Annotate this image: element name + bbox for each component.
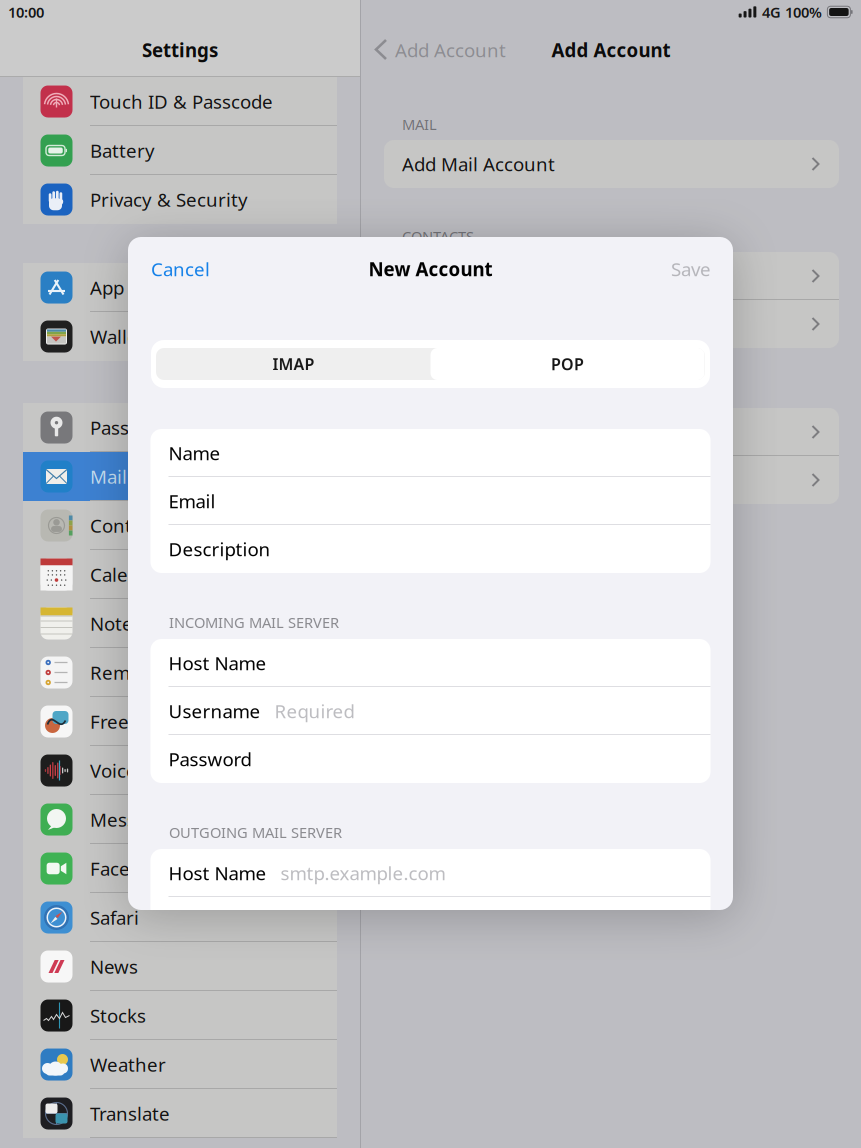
button[interactable]: Privacy & Security	[23, 175, 337, 224]
staticText: Username	[168, 909, 260, 933]
staticText: iCloud	[402, 264, 458, 288]
button[interactable]: Stocks	[23, 991, 337, 1040]
staticText: Name	[168, 441, 220, 465]
button[interactable]: Description	[150, 525, 710, 573]
staticText: CALENDARS	[402, 382, 483, 402]
staticText: News	[90, 954, 138, 979]
button[interactable]: Safari	[23, 893, 337, 942]
button[interactable]: Password	[150, 735, 710, 783]
button[interactable]: Passwords	[23, 403, 337, 452]
staticText: Cancel	[151, 257, 210, 281]
staticText: INCOMING MAIL SERVER	[169, 612, 339, 632]
staticText: 4G 100%	[762, 2, 822, 22]
button[interactable]: Save	[671, 237, 711, 301]
staticText: Settings	[142, 38, 218, 62]
staticText: Passwords	[90, 415, 182, 440]
staticText: iCloud	[402, 420, 458, 444]
button[interactable]: Mail	[23, 452, 337, 501]
staticText: OUTGOING MAIL SERVER	[169, 822, 342, 842]
button[interactable]: Battery	[23, 126, 337, 175]
staticText: Mail	[90, 464, 127, 489]
staticText: Touch ID & Passcode	[90, 89, 273, 114]
button[interactable]: Voice Memos	[23, 746, 337, 795]
staticText: New Account	[368, 257, 492, 281]
staticText: Voice Memos	[90, 758, 207, 783]
button[interactable]: FaceTime	[23, 844, 337, 893]
staticText: Calendar	[90, 562, 169, 587]
button[interactable]: Notes	[23, 599, 337, 648]
staticText: CONTACTS	[402, 226, 474, 246]
staticText: Host Name	[168, 861, 266, 885]
staticText: Save	[671, 257, 711, 281]
staticText: Contacts	[90, 513, 167, 538]
button[interactable]: Host Name	[150, 849, 710, 897]
staticText: Translate	[90, 1101, 170, 1126]
button[interactable]: Touch ID & Passcode	[23, 77, 337, 126]
button[interactable]: Contacts	[23, 501, 337, 550]
staticText: Optional	[274, 909, 350, 933]
staticText: Stocks	[90, 1003, 146, 1028]
staticText: Required	[274, 699, 354, 723]
staticText: App Store	[90, 275, 175, 300]
staticText: Username	[168, 699, 260, 723]
button[interactable]: Add Account	[384, 456, 839, 504]
button[interactable]: Freeform	[23, 697, 337, 746]
staticText: Add Account	[551, 38, 670, 62]
staticText: Description	[168, 537, 270, 561]
button[interactable]: Add Mail Account	[384, 140, 839, 188]
button[interactable]: App Store	[23, 263, 337, 312]
staticText: Battery	[90, 138, 155, 163]
button[interactable]: Weather	[23, 1040, 337, 1089]
button[interactable]: Name	[150, 429, 710, 477]
button[interactable]: Cancel	[151, 237, 210, 301]
button[interactable]: Translate	[23, 1089, 337, 1138]
staticText: Email	[168, 489, 215, 513]
button[interactable]: iCloud	[384, 408, 839, 456]
staticText: Host Name	[168, 651, 266, 675]
button[interactable]: POP	[430, 348, 704, 380]
button[interactable]: Add Account	[361, 24, 506, 76]
button[interactable]: Reminders	[23, 648, 337, 697]
staticText: Freeform	[90, 709, 171, 734]
button[interactable]: Calendar	[23, 550, 337, 599]
staticText: Password	[168, 747, 251, 771]
button[interactable]: IMAP	[156, 348, 430, 380]
button[interactable]: Add Account	[384, 300, 839, 348]
button[interactable]: Host Name	[150, 639, 710, 687]
button[interactable]: News	[23, 942, 337, 991]
staticText: Add Account	[402, 468, 513, 492]
staticText: Add Mail Account	[402, 152, 555, 176]
button[interactable]: Wallet	[23, 312, 337, 361]
staticText: Messages	[90, 807, 177, 832]
button[interactable]: Email	[150, 477, 710, 525]
button[interactable]: Username	[150, 687, 710, 735]
staticText: MAIL	[402, 114, 437, 134]
staticText: Weather	[90, 1052, 166, 1077]
staticText: Safari	[90, 905, 139, 930]
staticText: Notes	[90, 611, 142, 636]
staticText: smtp.example.com	[280, 861, 445, 885]
staticText: POP	[551, 353, 584, 375]
button[interactable]: Messages	[23, 795, 337, 844]
button[interactable]: Username	[150, 897, 710, 945]
staticText: 10:00	[8, 2, 44, 22]
staticText: Reminders	[90, 660, 186, 685]
button[interactable]: iCloud	[384, 252, 839, 300]
staticText: Wallet	[90, 324, 145, 349]
staticText: IMAP	[272, 353, 314, 375]
staticText: FaceTime	[90, 856, 173, 881]
staticText: Privacy & Security	[90, 187, 248, 212]
staticText: Add Account	[395, 38, 506, 62]
